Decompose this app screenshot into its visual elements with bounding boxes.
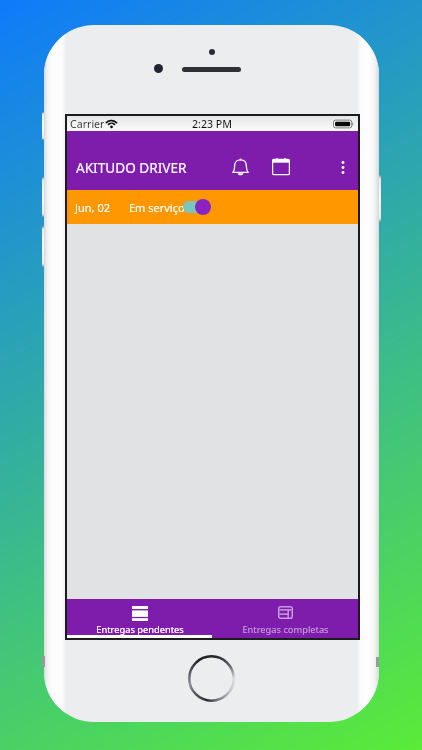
button[interactable]: Home xyxy=(188,655,235,702)
staticText: Em serviço xyxy=(129,200,185,215)
button[interactable]: Entregas pendentes xyxy=(67,599,212,638)
staticText: Jun, 02 xyxy=(75,200,110,215)
button[interactable]: Em serviço toggle xyxy=(180,197,213,217)
button[interactable]: More options xyxy=(326,144,359,190)
button[interactable]: Entregas completas xyxy=(212,599,358,638)
staticText: Entregas pendentes xyxy=(96,623,184,636)
staticText: Entregas completas xyxy=(242,623,329,636)
button[interactable]: Calendar xyxy=(261,144,301,190)
staticText: AKITUDO DRIVER xyxy=(76,158,187,177)
button[interactable]: Notifications xyxy=(220,144,260,190)
staticText: 2:23 PM xyxy=(192,117,233,131)
staticText: Carrier xyxy=(70,117,105,131)
